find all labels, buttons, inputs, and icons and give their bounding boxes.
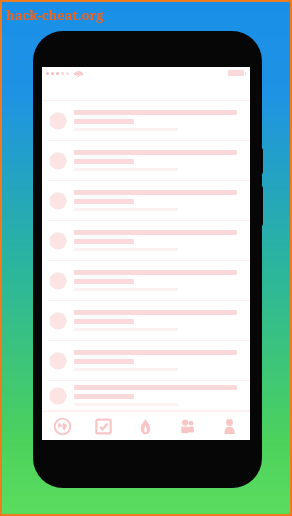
button[interactable]: Events	[83, 412, 124, 440]
button[interactable]	[42, 381, 250, 411]
button[interactable]	[42, 221, 250, 261]
button[interactable]	[42, 141, 250, 181]
button[interactable]: Trending	[124, 412, 166, 440]
button[interactable]: Discover	[42, 412, 83, 440]
button[interactable]: Profile	[208, 412, 250, 440]
button[interactable]	[42, 341, 250, 381]
button[interactable]	[42, 261, 250, 301]
button[interactable]	[42, 101, 250, 141]
button[interactable]	[42, 301, 250, 341]
button[interactable]: Groups	[166, 412, 208, 440]
staticText: hack-cheat.org	[6, 6, 104, 24]
button[interactable]	[42, 181, 250, 221]
